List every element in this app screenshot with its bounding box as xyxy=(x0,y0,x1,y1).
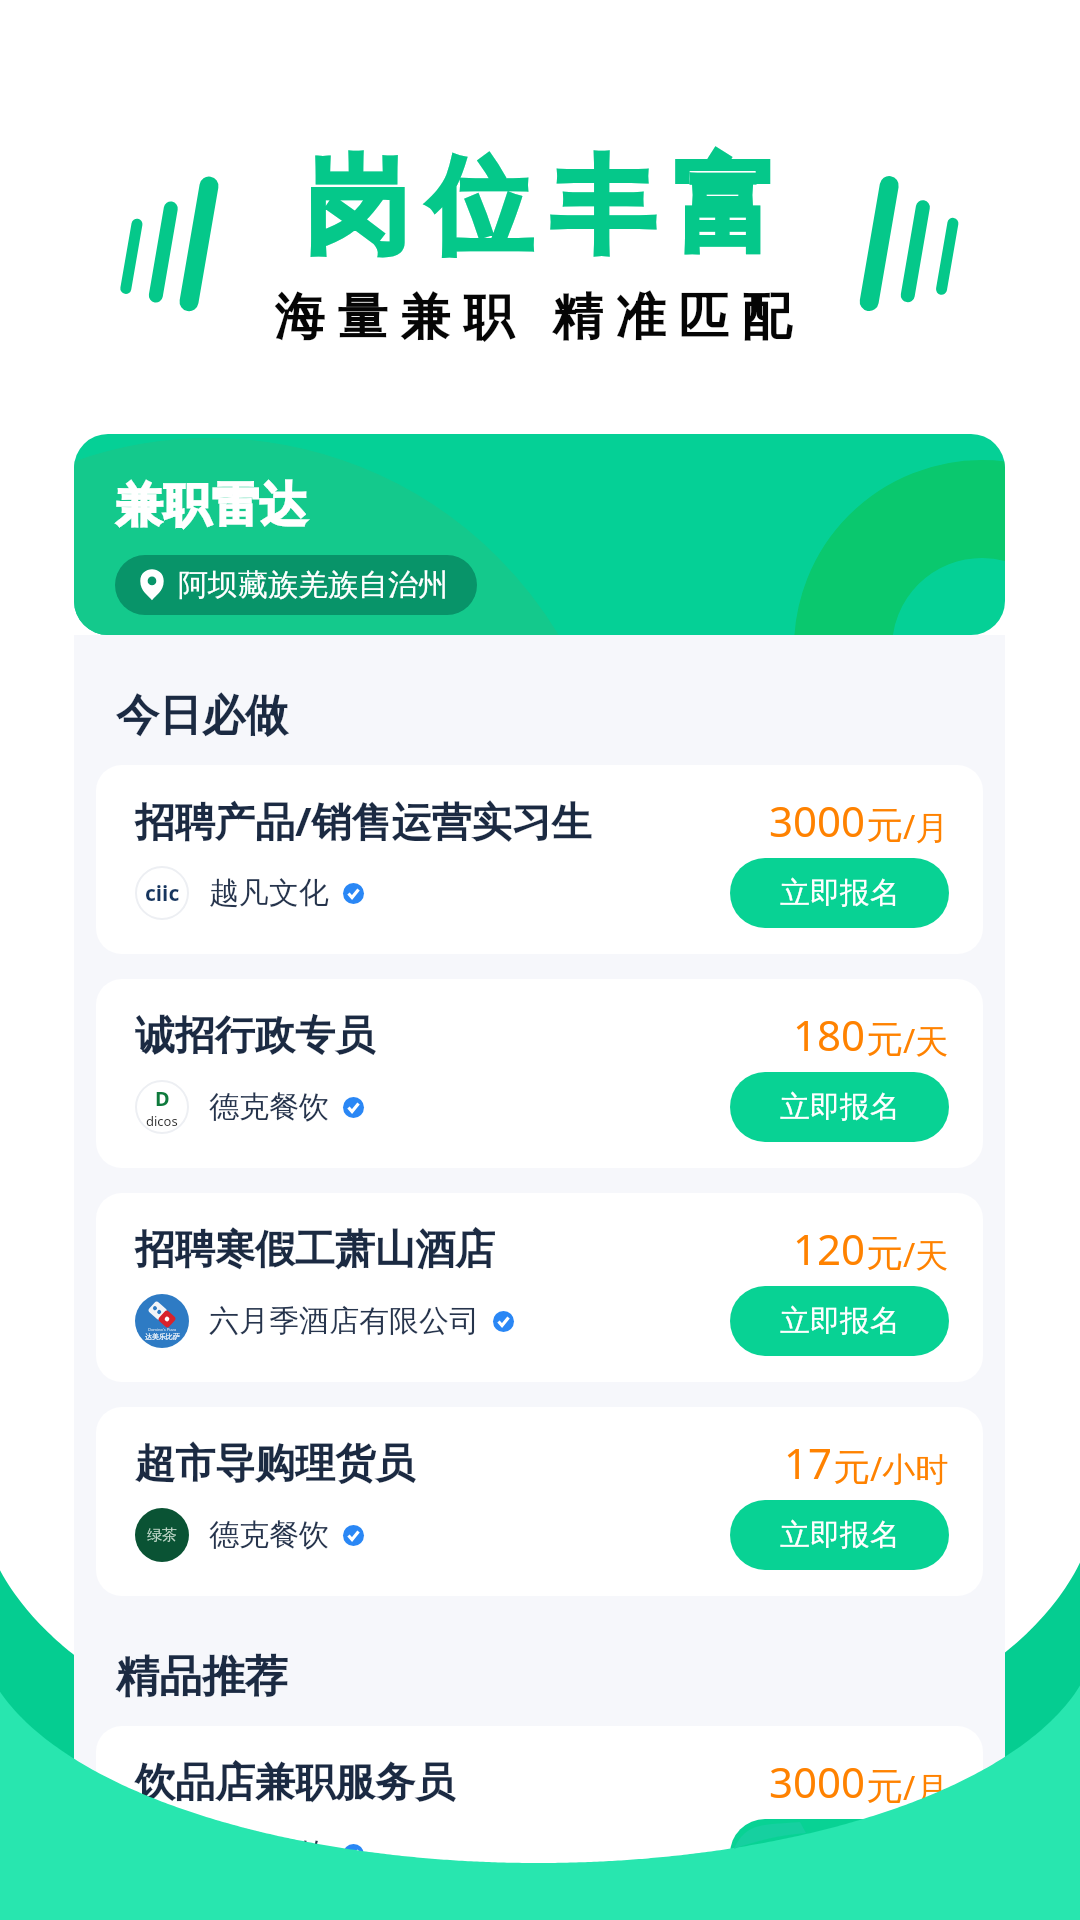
staticText: 招聘寒假工萧山酒店 xyxy=(135,1224,793,1274)
staticText: 3000 xyxy=(769,1753,866,1810)
staticText: 元 xyxy=(833,1444,870,1491)
staticText: 诚招行政专员 xyxy=(135,1010,793,1060)
staticText: /天 xyxy=(903,1232,949,1277)
staticText: 立即报名 xyxy=(780,1088,900,1126)
staticText: 180 xyxy=(793,1006,866,1063)
staticText: ciic xyxy=(145,879,180,908)
staticText: 岗位丰富 xyxy=(295,142,787,273)
staticText: 兼职雷达 xyxy=(115,476,307,535)
staticText: 3000 xyxy=(769,792,866,849)
staticText: /小时 xyxy=(870,1446,949,1491)
staticText: 德克餐饮 xyxy=(209,1835,329,1873)
staticText: 六月季酒店有限公司 xyxy=(209,1302,479,1340)
staticText: 海量兼职 精准匹配 xyxy=(268,281,798,349)
staticText: 元 xyxy=(866,802,903,849)
staticText: 德克餐饮 xyxy=(209,1516,329,1554)
staticText: D xyxy=(155,1085,170,1112)
staticText: 阿坝藏族羌族自治州 xyxy=(178,566,448,604)
staticText: 饮品店兼职服务员 xyxy=(135,1757,769,1807)
staticText: 立即报名 xyxy=(780,1835,900,1873)
staticText: 德克餐饮 xyxy=(209,1088,329,1126)
button[interactable]: 超市导购理货员 xyxy=(96,1407,983,1596)
button[interactable]: 饮品店兼职服务员 xyxy=(96,1726,983,1915)
staticText: 超市导购理货员 xyxy=(135,1438,784,1488)
staticText: 招聘产品/销售运营实习生 xyxy=(135,793,769,848)
staticText: 17 xyxy=(784,1434,833,1491)
staticText: Domino's Pizza xyxy=(148,1327,177,1332)
staticText: 绿茶 xyxy=(147,1526,177,1545)
staticText: 达美乐比萨 xyxy=(145,1332,180,1341)
button[interactable]: 立即报名 xyxy=(730,1072,949,1142)
button[interactable]: 招聘寒假工萧山酒店 xyxy=(96,1193,983,1382)
staticText: 立即报名 xyxy=(780,1302,900,1340)
staticText: 立即报名 xyxy=(780,874,900,912)
staticText: /月 xyxy=(903,804,949,849)
other: Location xyxy=(135,568,169,602)
button[interactable]: Location xyxy=(115,555,477,615)
staticText: 精品推荐 xyxy=(116,1650,288,1704)
staticText: 今日必做 xyxy=(116,689,288,743)
staticText: 元 xyxy=(866,1763,903,1810)
staticText: /天 xyxy=(903,1018,949,1063)
staticText: 元 xyxy=(866,1016,903,1063)
button[interactable]: 立即报名 xyxy=(730,858,949,928)
staticText: /月 xyxy=(903,1765,949,1810)
staticText: 120 xyxy=(793,1220,866,1277)
staticText: 立即报名 xyxy=(780,1516,900,1554)
button[interactable]: 招聘产品/销售运营实习生 xyxy=(96,765,983,954)
button[interactable]: 立即报名 xyxy=(730,1500,949,1570)
staticText: 元 xyxy=(866,1230,903,1277)
button[interactable]: 立即报名 xyxy=(730,1286,949,1356)
button[interactable]: 立即报名 xyxy=(730,1819,949,1889)
staticText: dicos xyxy=(146,1112,178,1130)
button[interactable]: 诚招行政专员 xyxy=(96,979,983,1168)
staticText: 越凡文化 xyxy=(209,874,329,912)
